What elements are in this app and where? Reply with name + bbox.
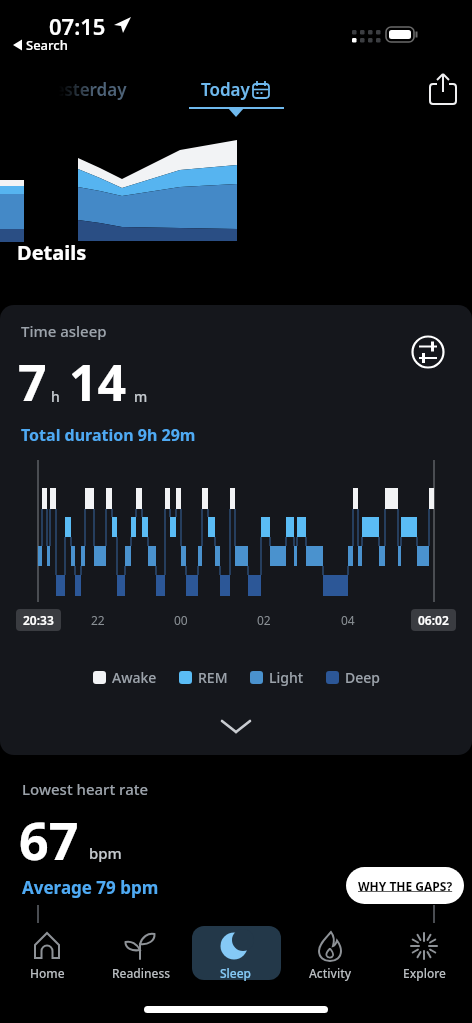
staticText: Sleep [220,965,252,981]
staticText: Yesterday [45,78,127,101]
button[interactable] [408,332,448,372]
button[interactable]: Readiness [94,918,188,990]
staticText: Home [30,965,65,981]
button[interactable]: Sleep [189,918,283,990]
staticText: 06:02 [418,612,449,628]
staticText: Average 79 bpm [22,876,159,899]
staticText: Readiness [112,965,171,981]
staticText: 02 [257,612,271,628]
staticText: 00 [174,612,188,628]
button[interactable]: WHY THE GAPS? [346,867,464,904]
staticText: 7 [18,348,47,416]
staticText: h [51,387,60,406]
staticText: 67 [19,804,79,875]
staticText: Total duration 9h 29m [21,424,196,446]
button[interactable]: Activity [283,918,377,990]
staticText: 14 [69,348,127,416]
button[interactable] [192,926,281,980]
button[interactable] [420,65,470,115]
staticText: Deep [345,668,380,687]
staticText: REM [198,668,228,687]
staticText: Search [26,36,68,54]
staticText: 04 [341,612,355,628]
staticText: 20:33 [23,612,54,628]
staticText: Light [269,668,304,687]
button[interactable] [150,70,320,120]
button[interactable] [0,70,150,120]
staticText: WHY THE GAPS? [358,878,453,894]
staticText: 07:15 [49,11,106,41]
button[interactable]: Explore [377,918,471,990]
staticText: m [134,387,148,406]
button[interactable] [216,713,256,739]
staticText: 22 [91,612,105,628]
button[interactable]: Home [0,918,94,990]
staticText: Activity [309,965,352,981]
staticText: Lowest heart rate [22,779,149,799]
staticText: Details [17,239,87,266]
staticText: Time asleep [21,321,107,341]
staticText: Explore [403,965,446,981]
staticText: Today [201,78,250,101]
staticText: bpm [89,843,122,863]
staticText: Awake [112,668,157,687]
